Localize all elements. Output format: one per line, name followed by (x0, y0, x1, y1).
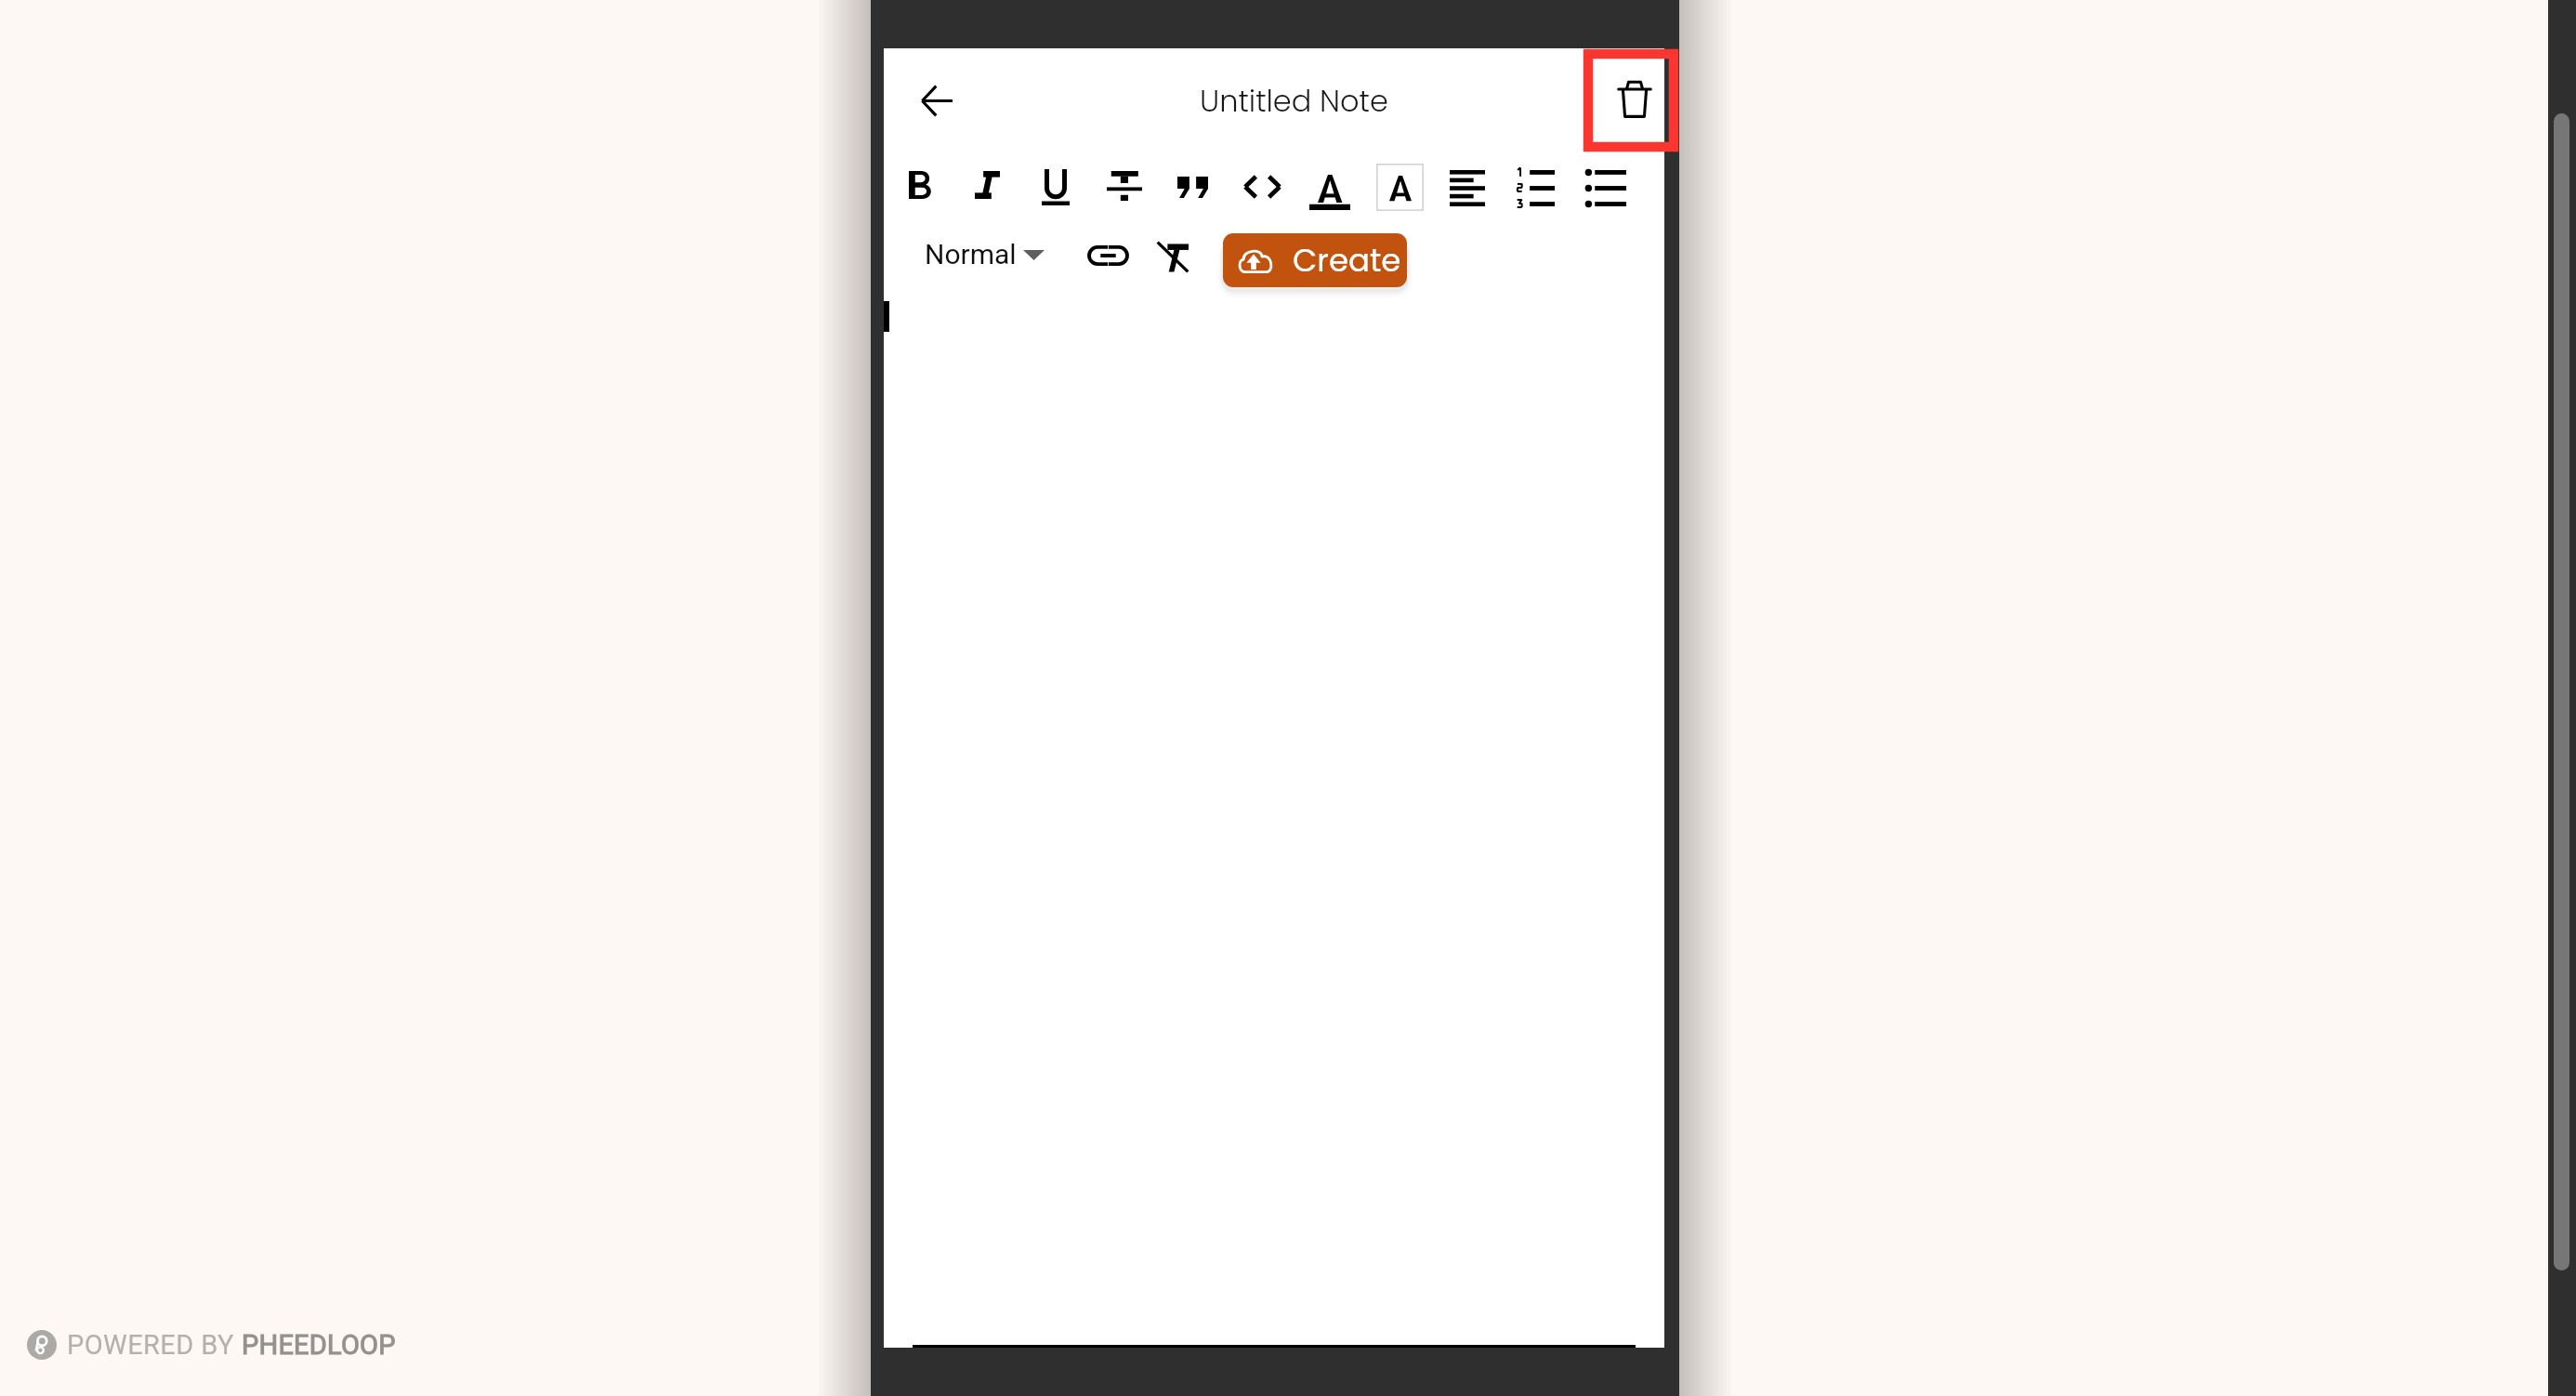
button[interactable]: Code block (1229, 154, 1295, 219)
button[interactable]: Text alignment (1435, 155, 1500, 220)
button[interactable]: Bold (887, 152, 953, 217)
button[interactable]: Highlight colour (1367, 154, 1432, 219)
button[interactable]: Delete note (1588, 54, 1674, 147)
button[interactable]: Create (1223, 233, 1407, 287)
button[interactable]: Back (901, 65, 972, 136)
button[interactable]: Normal (915, 230, 1054, 278)
button[interactable]: Blockquote (1160, 154, 1225, 219)
button[interactable]: Delete (1602, 69, 1666, 129)
staticText: PHEEDLOOP (242, 1329, 396, 1361)
button[interactable]: Italic (954, 152, 1019, 217)
button[interactable]: Insert link (1075, 223, 1140, 288)
staticText: Untitled Note (1200, 80, 1388, 122)
button[interactable]: Clear formatting (1140, 224, 1205, 289)
button[interactable]: Strikethrough (1092, 153, 1157, 218)
staticText: POWERED BY (67, 1329, 242, 1361)
button[interactable]: Bulleted list (1573, 155, 1638, 220)
staticText: Normal (925, 238, 1017, 270)
button[interactable]: Underline (1023, 154, 1088, 219)
staticText: Create (1293, 238, 1401, 283)
button[interactable]: Numbered list (1503, 155, 1568, 220)
button[interactable]: Text colour (1297, 160, 1362, 225)
